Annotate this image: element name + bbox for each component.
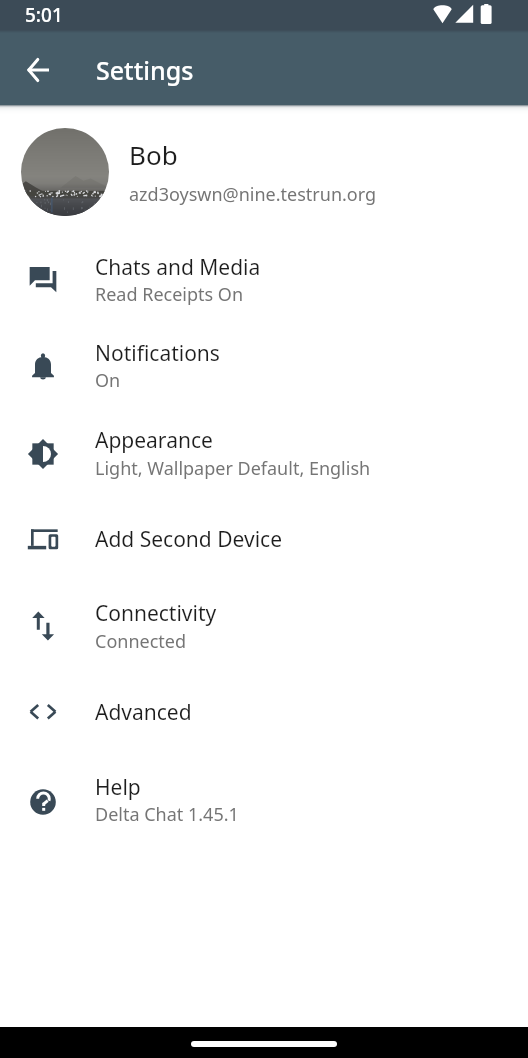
button[interactable]: Notifications: [0, 323, 528, 409]
button[interactable]: Chats and Media: [0, 236, 528, 322]
staticText: Settings: [96, 53, 194, 87]
staticText: Delta Chat 1.45.1: [95, 802, 239, 827]
staticText: Chats and Media: [95, 253, 261, 282]
staticText: Add Second Device: [95, 525, 282, 554]
staticText: Connected: [95, 629, 187, 654]
staticText: azd3oyswn@nine.testrun.org: [129, 182, 377, 207]
staticText: Help: [95, 773, 141, 802]
button[interactable]: Bob: [0, 112, 528, 230]
staticText: On: [95, 368, 121, 393]
button[interactable]: Connectivity: [0, 584, 528, 670]
staticText: Bob: [129, 137, 178, 172]
staticText: Light, Wallpaper Default, English: [95, 456, 371, 481]
button[interactable]: Back: [14, 46, 62, 94]
staticText: Advanced: [95, 698, 192, 727]
staticText: 5:01: [25, 2, 63, 28]
button[interactable]: Appearance: [0, 411, 528, 497]
button[interactable]: Add Second Device: [0, 497, 528, 583]
button[interactable]: Help: [0, 759, 528, 845]
staticText: Connectivity: [95, 599, 217, 628]
staticText: Appearance: [95, 426, 213, 455]
staticText: Notifications: [95, 339, 220, 368]
button[interactable]: Advanced: [0, 671, 528, 757]
staticText: Read Receipts On: [95, 282, 244, 307]
